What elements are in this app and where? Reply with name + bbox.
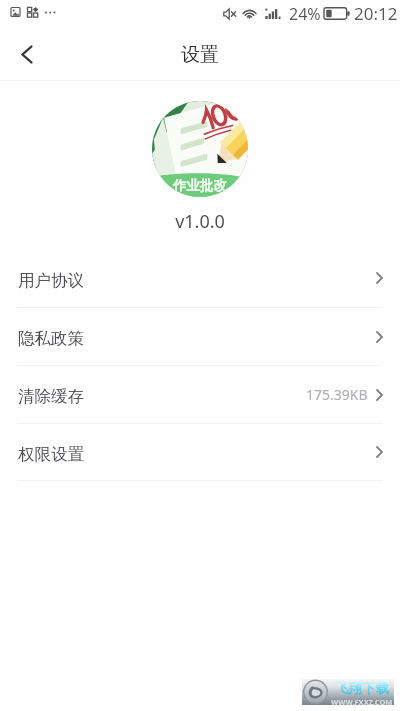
button[interactable]: 用户协议: [0, 249, 400, 308]
staticText: v1.0.0: [0, 209, 400, 234]
button[interactable]: Back: [0, 28, 54, 81]
staticText: 作业批改: [173, 177, 227, 194]
staticText: 清除缓存: [18, 386, 84, 407]
staticText: 24%: [289, 3, 321, 25]
staticText: 隐私政策: [18, 328, 84, 349]
button[interactable]: 权限设置: [0, 424, 400, 481]
button[interactable]: 清除缓存: [0, 366, 400, 424]
staticText: 权限设置: [18, 444, 84, 465]
staticText: WWW.FXXZ.COM: [331, 697, 393, 706]
staticText: 设置: [181, 43, 219, 67]
staticText: 175.39KB: [306, 385, 368, 404]
button[interactable]: 隐私政策: [0, 308, 400, 366]
staticText: 飞翔下载: [335, 680, 389, 697]
staticText: 用户协议: [18, 270, 84, 291]
staticText: 20:12: [354, 2, 398, 25]
